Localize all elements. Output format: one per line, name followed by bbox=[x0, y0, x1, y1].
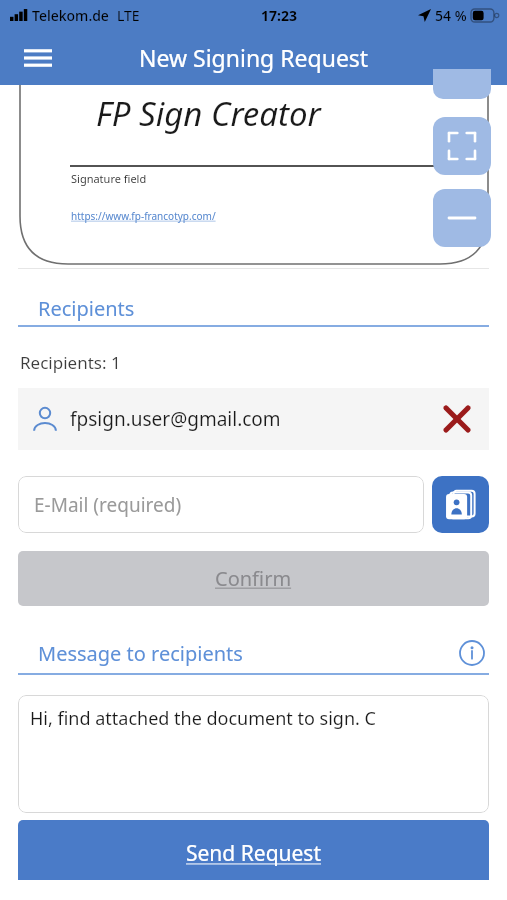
button[interactable]: Choose contact bbox=[432, 476, 489, 533]
staticText: LTE bbox=[117, 6, 140, 25]
button[interactable]: Zoom out bbox=[433, 189, 491, 247]
staticText: Signature field bbox=[71, 171, 147, 186]
staticText: fpsign.user@gmail.com bbox=[70, 406, 281, 432]
button[interactable]: E-Mail (required) bbox=[18, 476, 424, 533]
button[interactable]: Send Request bbox=[18, 820, 489, 880]
staticText: Message to recipients bbox=[38, 640, 243, 667]
staticText: Recipients: 1 bbox=[20, 351, 121, 374]
staticText: Send Request bbox=[186, 839, 322, 868]
button[interactable]: fpsign.user@gmail.com bbox=[18, 388, 489, 450]
button[interactable]: Info bbox=[455, 636, 489, 670]
button[interactable]: Remove recipient bbox=[439, 401, 475, 437]
button[interactable]: Zoom in bbox=[433, 69, 491, 99]
button[interactable]: Hi, find attached the document to sign. … bbox=[18, 695, 489, 813]
staticText: 17:23 bbox=[261, 6, 297, 25]
staticText: Confirm bbox=[215, 565, 292, 592]
button[interactable]: Fullscreen bbox=[433, 117, 491, 175]
button[interactable]: https://www.fp-francotyp.com/ bbox=[71, 209, 216, 223]
staticText: Recipients bbox=[38, 295, 135, 322]
staticText: Hi, find attached the document to sign. … bbox=[30, 706, 376, 731]
button[interactable]: Confirm bbox=[18, 551, 489, 606]
staticText: 54 % bbox=[435, 6, 467, 25]
staticText: Telekom.de bbox=[32, 6, 109, 25]
staticText: FP Sign Creator bbox=[96, 91, 321, 136]
staticText: E-Mail (required) bbox=[34, 492, 182, 518]
staticText: New Signing Request bbox=[139, 42, 369, 73]
button[interactable]: Menu bbox=[14, 34, 62, 82]
